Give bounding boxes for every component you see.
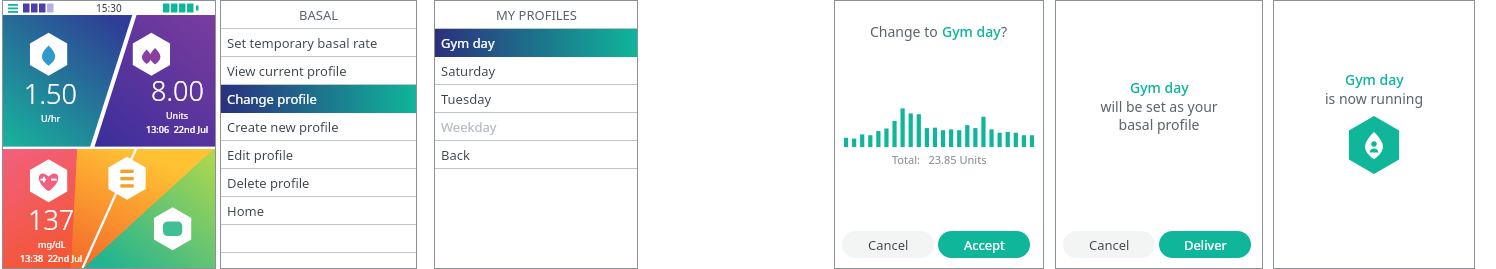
staticText: BASAL xyxy=(299,6,339,24)
staticText: Edit profile xyxy=(227,146,294,164)
button[interactable]: Cancel xyxy=(1063,231,1155,258)
staticText: Set temporary basal rate xyxy=(227,34,378,52)
staticText: Deliver xyxy=(1184,236,1227,254)
staticText: mg/dL xyxy=(38,238,66,250)
button[interactable]: Delete profile xyxy=(220,169,417,197)
staticText: Weekday xyxy=(441,118,497,136)
button[interactable]: Saturday xyxy=(434,57,638,85)
other: Profile running xyxy=(1345,116,1403,174)
staticText: Tuesday xyxy=(441,90,492,108)
staticText: Change to xyxy=(870,22,942,41)
button[interactable]: Create new profile xyxy=(220,113,417,141)
button[interactable]: Set temporary basal rate xyxy=(220,29,417,57)
button[interactable]: Back xyxy=(434,141,638,169)
button[interactable]: Cancel xyxy=(842,231,934,258)
staticText: is now running xyxy=(1325,89,1424,108)
staticText: 13:38 22nd Jul xyxy=(20,252,83,264)
staticText: 137 xyxy=(28,201,75,238)
staticText: 8.00 xyxy=(151,72,204,109)
staticText: Total: 23.85 Units xyxy=(892,152,987,167)
staticText: Gym day xyxy=(1130,78,1189,97)
button[interactable]: Change profile xyxy=(220,85,417,113)
staticText: Cancel xyxy=(1089,236,1130,254)
button[interactable]: Edit profile xyxy=(220,141,417,169)
button[interactable]: Deliver xyxy=(1159,231,1251,258)
staticText: Delete profile xyxy=(227,174,310,192)
staticText: Accept xyxy=(964,236,1005,254)
staticText: 15:30 xyxy=(96,1,122,15)
staticText: Back xyxy=(441,146,470,164)
staticText: Cancel xyxy=(868,236,909,254)
staticText: Gym day xyxy=(1345,70,1404,89)
staticText: Home xyxy=(227,202,264,220)
staticText: Change profile xyxy=(227,90,317,108)
staticText: Gym day xyxy=(942,22,1001,41)
staticText: 13:06 22nd Jul xyxy=(146,123,209,135)
staticText: MY PROFILES xyxy=(496,6,577,24)
button[interactable]: Weekday xyxy=(434,113,638,141)
button[interactable]: View current profile xyxy=(220,57,417,85)
staticText: ? xyxy=(1001,22,1008,41)
staticText: U/hr xyxy=(41,112,61,124)
staticText: 1.50 xyxy=(24,75,77,112)
button[interactable]: Gym day xyxy=(434,29,638,57)
staticText: View current profile xyxy=(227,62,347,80)
staticText: will be set as your basal profile xyxy=(1100,97,1218,134)
button[interactable]: Accept xyxy=(938,231,1030,258)
staticText: Create new profile xyxy=(227,118,339,136)
staticText: Gym day xyxy=(441,34,495,52)
staticText: Saturday xyxy=(441,62,496,80)
button[interactable]: Home xyxy=(220,197,417,225)
button[interactable]: Tuesday xyxy=(434,85,638,113)
staticText: Units xyxy=(166,109,189,121)
